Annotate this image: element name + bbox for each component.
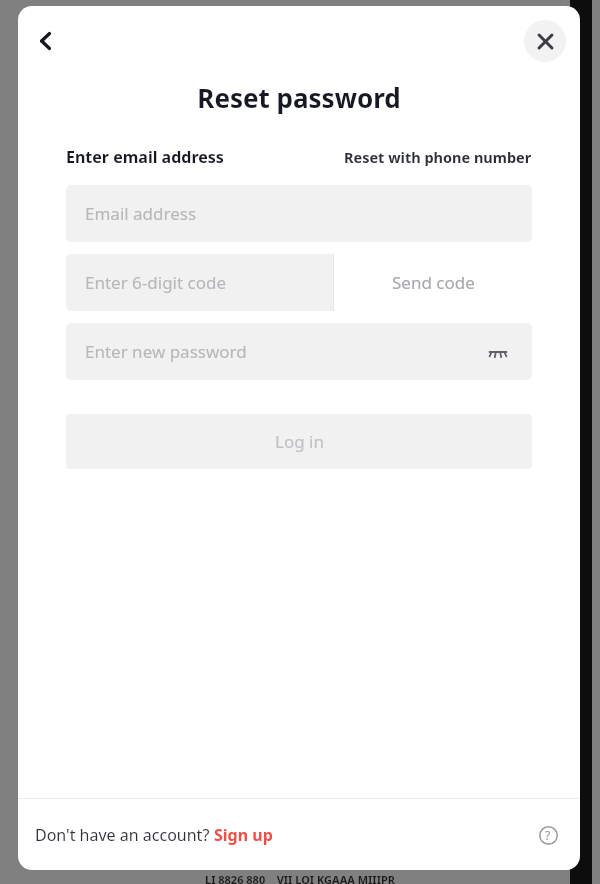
staticText: Email address [85,202,197,225]
staticText: Enter 6-digit code [85,271,227,294]
staticText: LI 8826 880 VII LOI KGAAA MIIIPR [205,872,395,884]
button[interactable]: Close [524,20,566,62]
button[interactable]: Enter 6-digit code [66,254,333,311]
button[interactable]: Log in [66,414,532,469]
button[interactable]: Send code [334,254,532,311]
button[interactable]: Show password [483,337,513,367]
button[interactable]: Help [530,817,566,853]
staticText: Sign up [214,824,273,846]
button[interactable]: Email address [66,185,532,242]
staticText: ? [545,827,551,843]
staticText: Reset with phone number [344,147,532,167]
staticText: Enter new password [85,340,247,363]
staticText: Reset password [197,80,401,115]
button[interactable]: Don't have an account? [35,824,273,846]
button[interactable]: Reset with phone number [344,147,532,167]
staticText: Enter email address [66,146,224,168]
button[interactable]: Back [22,17,70,65]
button[interactable]: Enter new password [66,323,532,380]
staticText: Log in [275,430,324,453]
staticText: Don't have an account? [35,824,214,846]
staticText: Send code [392,271,475,294]
